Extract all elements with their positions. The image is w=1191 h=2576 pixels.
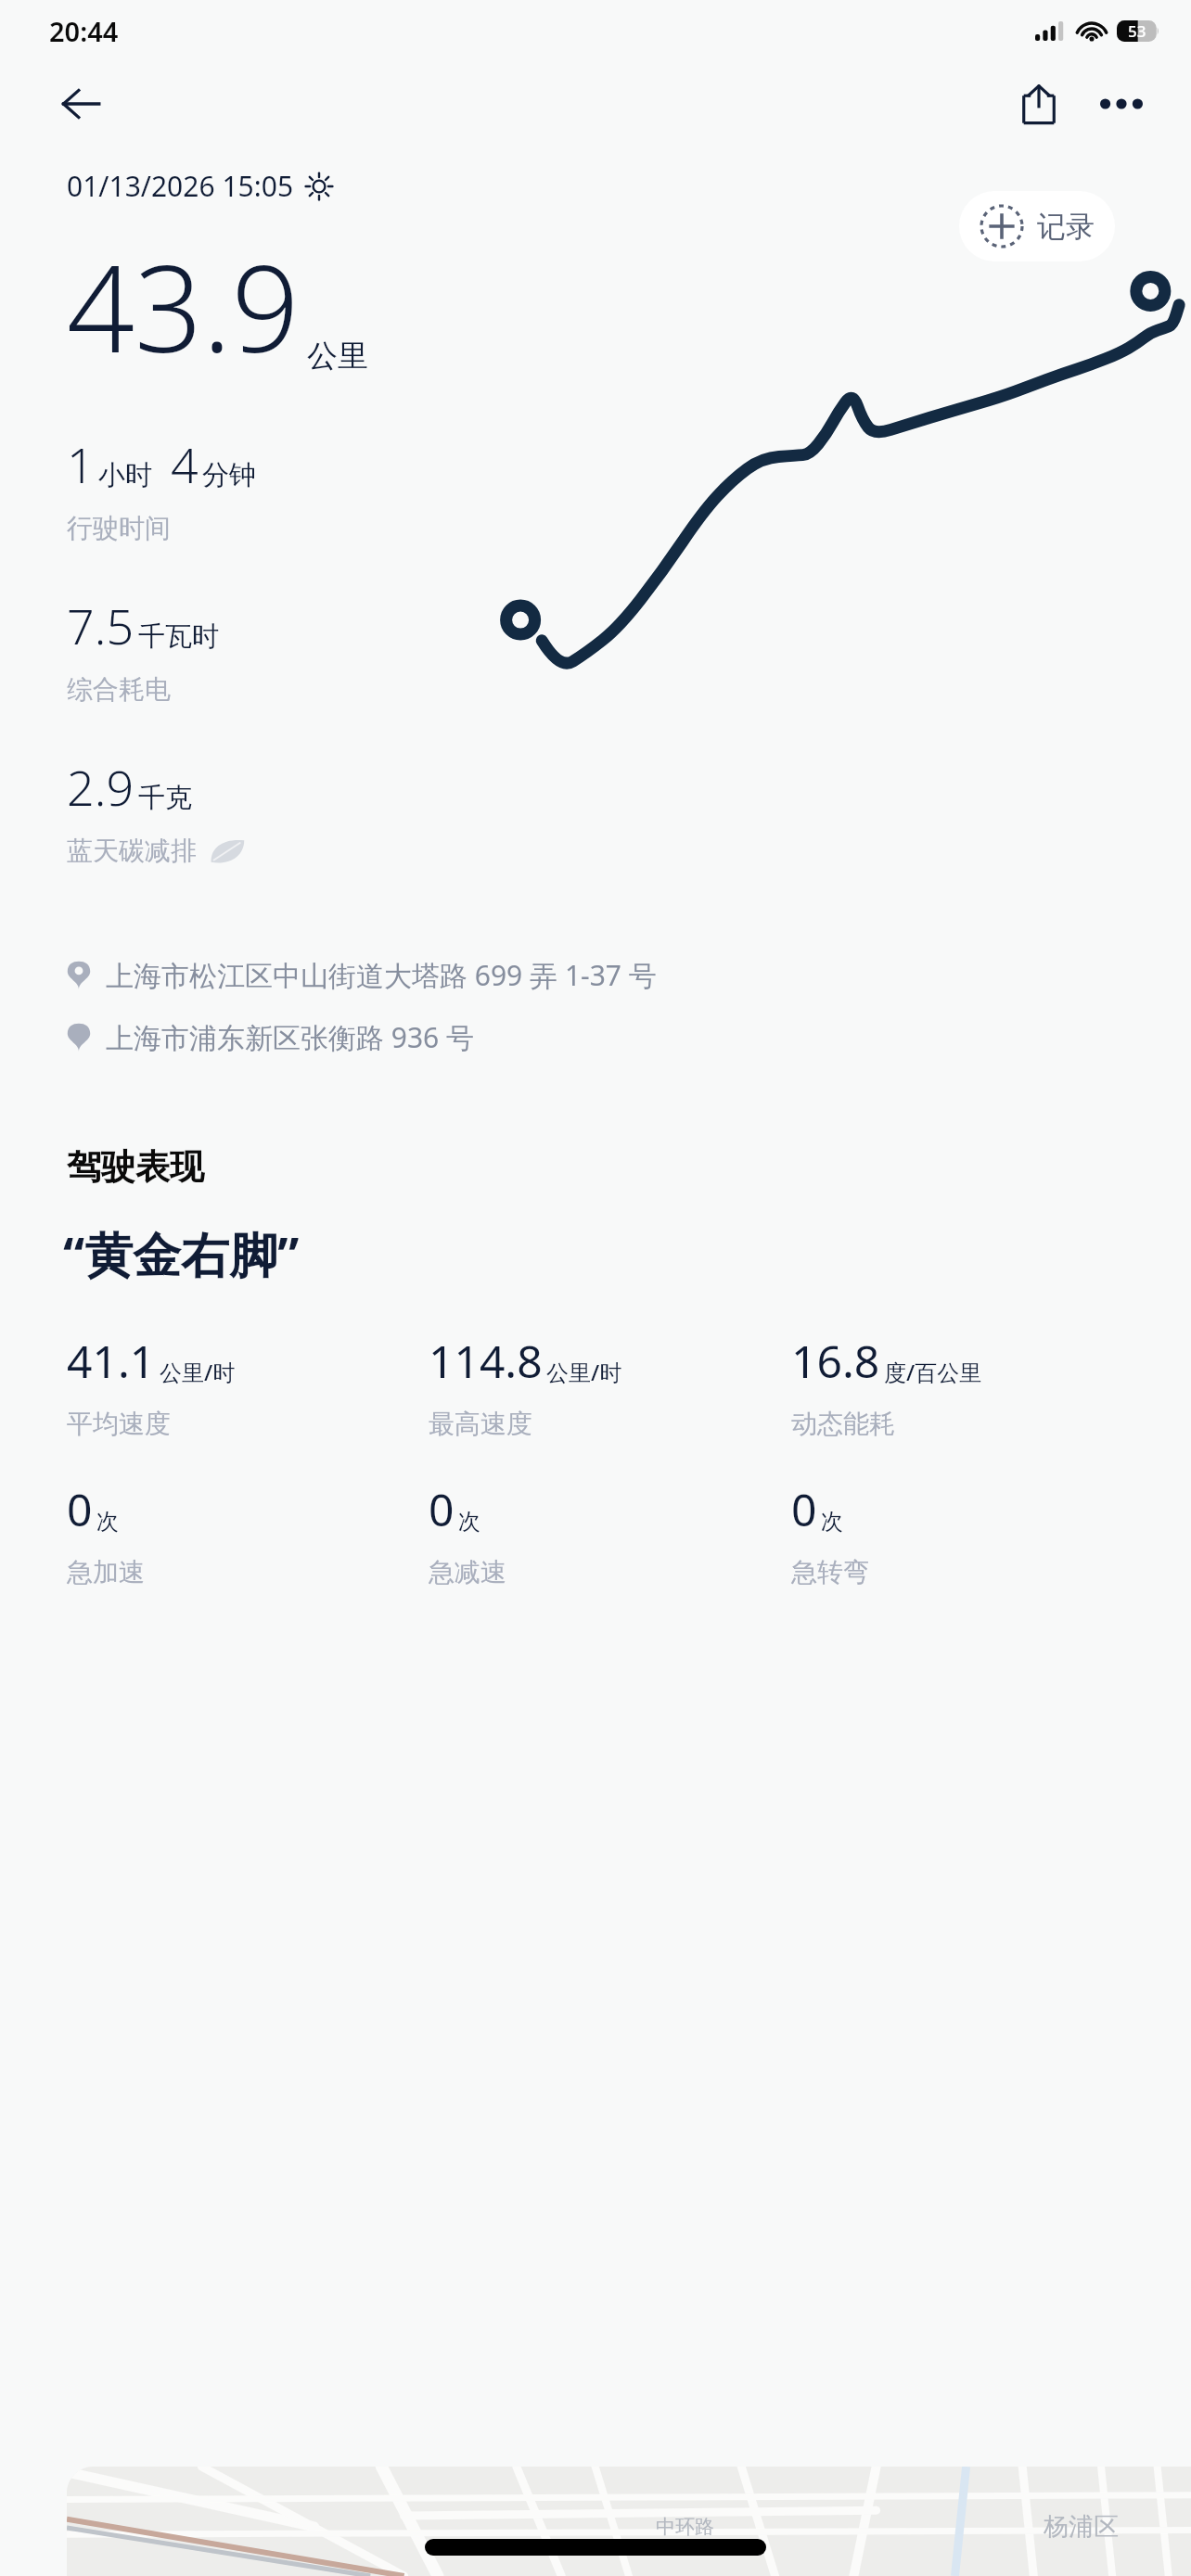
staticText: 7.5 [67,593,134,658]
staticText: 次 [96,1508,119,1536]
staticText: 记录 [1037,209,1095,245]
staticText: 0 [429,1479,455,1539]
staticText: 行驶时间 [67,512,171,544]
staticText: 41.1 [67,1331,156,1391]
button[interactable]: Share [1005,70,1072,137]
staticText: 蓝天碳减排 [67,835,197,867]
staticText: 综合耗电 [67,673,171,706]
staticText: 杨浦区 [1044,2511,1119,2543]
staticText: 上海市松江区中山街道大塔路 699 弄 1-37 号 [106,956,657,994]
staticText: 千瓦时 [138,619,219,654]
staticText: 急加速 [67,1556,145,1588]
staticText: 驾驶表现 [67,1145,204,1189]
staticText: 小时 [98,458,152,492]
staticText: 分钟 [202,458,256,492]
staticText: 1 [67,431,95,497]
staticText: 2.9 [67,754,134,820]
staticText: 次 [458,1508,480,1536]
staticText: 0 [67,1479,93,1539]
staticText: 次 [821,1508,843,1536]
staticText: “黄金右脚” [63,1220,300,1286]
staticText: 千克 [138,781,192,815]
staticText: 动态能耗 [791,1408,895,1440]
staticText: 度/百公里 [884,1357,982,1387]
button[interactable]: More options [1091,73,1152,134]
staticText: 53 [1128,20,1146,42]
staticText: 公里/时 [160,1357,236,1387]
staticText: 公里/时 [546,1357,622,1387]
staticText: 0 [791,1479,817,1539]
staticText: 公里 [307,337,368,376]
staticText: 上海市浦东新区张衡路 936 号 [106,1018,475,1056]
staticText: 中环路 [656,2515,714,2539]
staticText: 4 [171,431,198,497]
staticText: 最高速度 [429,1408,532,1440]
staticText: 16.8 [791,1331,880,1391]
staticText: 急转弯 [791,1556,869,1588]
button[interactable]: Map [67,2467,1191,2576]
staticText: 急减速 [429,1556,506,1588]
staticText: 114.8 [429,1331,543,1391]
staticText: 01/13/2026 15:05 [67,167,294,205]
button[interactable]: 上海市松江区中山街道大塔路 699 弄 1-37 号 [67,956,1154,994]
staticText: 43.9 [67,225,300,387]
staticText: 20:44 [49,13,119,49]
staticText: 平均速度 [67,1408,171,1440]
button[interactable]: Back [52,75,109,133]
button[interactable]: 记录 [959,191,1115,261]
button[interactable]: 上海市浦东新区张衡路 936 号 [67,1018,1154,1056]
